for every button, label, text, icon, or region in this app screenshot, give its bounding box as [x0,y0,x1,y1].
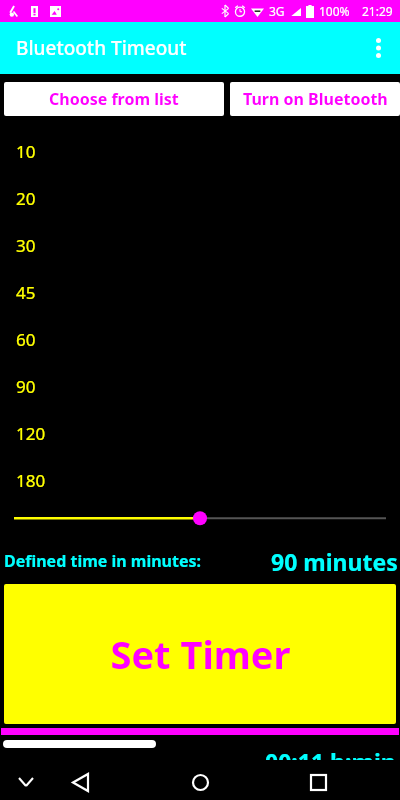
staticText: 3G [269,3,285,19]
staticText: Set Timer [110,628,291,680]
staticText: 21:29 [362,3,393,19]
button[interactable]: Back [58,764,102,800]
staticText: Turn on Bluetooth [243,88,388,110]
button[interactable]: 60 [0,316,400,363]
button[interactable]: 20 [0,175,400,222]
button[interactable]: Hide keyboard [6,764,46,800]
staticText: 30 [16,234,36,257]
button[interactable]: Turn on Bluetooth [230,82,400,116]
staticText: 90 minutes [271,546,398,576]
staticText: 20 [16,187,36,210]
button[interactable]: 45 [0,269,400,316]
staticText: 180 [16,469,46,492]
staticText: 90 [16,375,36,398]
button[interactable]: Home [178,764,222,800]
button[interactable]: Set Timer [4,584,396,724]
button[interactable]: Choose from list [4,82,224,116]
staticText: 45 [16,281,36,304]
staticText: Choose from list [49,88,179,110]
staticText: Bluetooth Timeout [16,35,187,61]
button[interactable]: 90 [0,363,400,410]
staticText: 60 [16,328,36,351]
staticText: Defined time in minutes: [4,550,202,572]
button[interactable]: 180 [0,457,400,504]
staticText: 100% [319,3,350,19]
staticText: 00:11 h:min [265,746,396,760]
button[interactable]: 30 [0,222,400,269]
button[interactable]: 10 [0,128,400,175]
button[interactable]: Timeout slider [0,504,400,538]
staticText: 120 [16,422,46,445]
button[interactable]: More options [356,26,400,70]
button[interactable]: Recent apps [296,764,340,800]
button[interactable]: 120 [0,410,400,457]
staticText: 10 [16,140,36,163]
